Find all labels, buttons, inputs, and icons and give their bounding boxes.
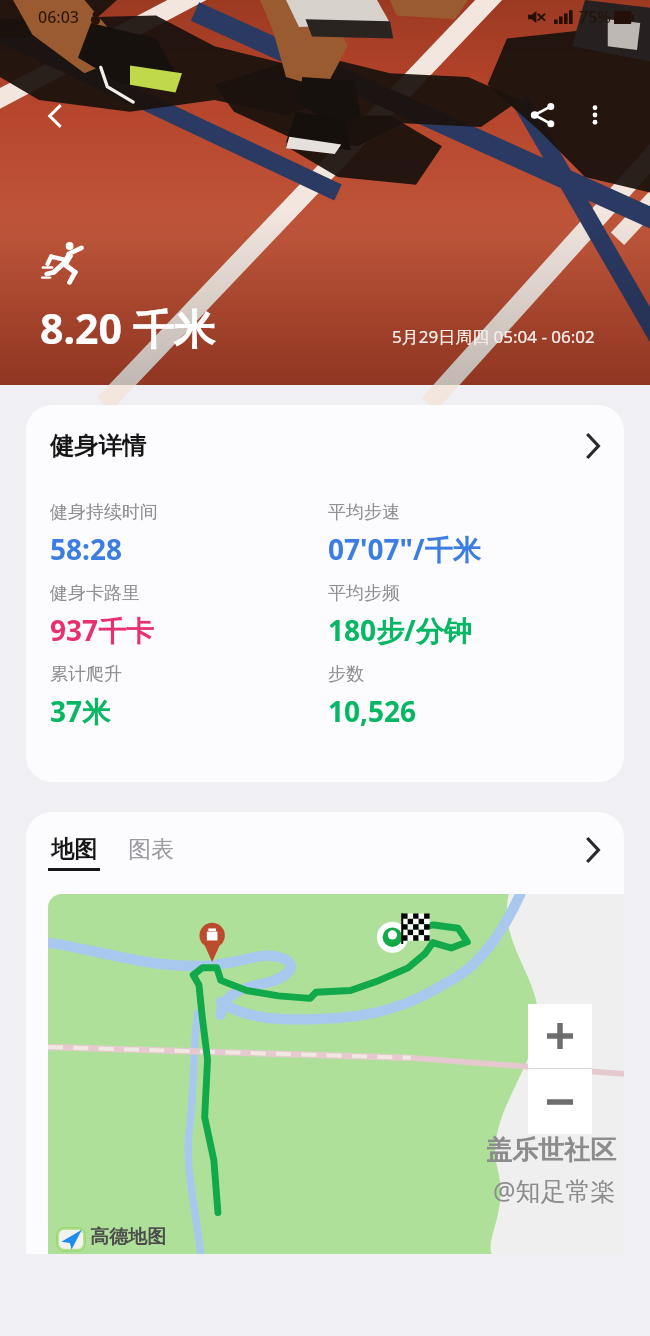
staticText: 180步/分钟	[328, 611, 472, 649]
staticText: @知足常楽	[493, 1173, 616, 1207]
staticText: 高德地图	[90, 1225, 166, 1249]
staticText: 健身卡路里	[50, 582, 140, 605]
staticText: 5月29日周四 05:04 - 06:02	[392, 325, 595, 348]
button[interactable]: Open map	[584, 835, 602, 872]
button[interactable]: 图表	[128, 835, 174, 871]
button[interactable]: Zoom out	[528, 1069, 592, 1134]
button[interactable]: 平均步速	[328, 501, 606, 568]
staticText: 75%	[579, 6, 611, 28]
button[interactable]: 健身详情	[26, 405, 624, 487]
button[interactable]: 健身持续时间	[50, 501, 328, 568]
button[interactable]: Zoom in	[528, 1004, 592, 1068]
button[interactable]: Share	[518, 90, 568, 140]
staticText: 58:28	[50, 530, 122, 568]
staticText: 8.20 千米	[40, 300, 215, 356]
button[interactable]: More options	[570, 90, 620, 140]
button[interactable]: 累计爬升	[50, 663, 328, 730]
staticText: 06:03	[38, 6, 79, 28]
button[interactable]: 地图	[48, 835, 100, 871]
staticText: 37米	[50, 692, 111, 730]
staticText: 累计爬升	[50, 663, 122, 686]
staticText: 图表	[128, 835, 174, 864]
staticText: 步数	[328, 663, 364, 686]
staticText: 平均步频	[328, 582, 400, 605]
staticText: 健身详情	[50, 431, 146, 461]
button[interactable]: 步数	[328, 663, 606, 730]
staticText: 健身持续时间	[50, 501, 158, 524]
staticText: 937千卡	[50, 611, 155, 649]
staticText: 07'07"/千米	[328, 530, 481, 568]
staticText: 地图	[51, 835, 97, 864]
staticText: 平均步速	[328, 501, 400, 524]
button[interactable]: 平均步频	[328, 582, 606, 649]
button[interactable]: Back	[30, 90, 82, 142]
button[interactable]: 健身卡路里	[50, 582, 328, 649]
button[interactable]: Route map	[48, 894, 624, 1254]
staticText: 10,526	[328, 692, 417, 730]
staticText: 盖乐世社区	[486, 1134, 616, 1167]
